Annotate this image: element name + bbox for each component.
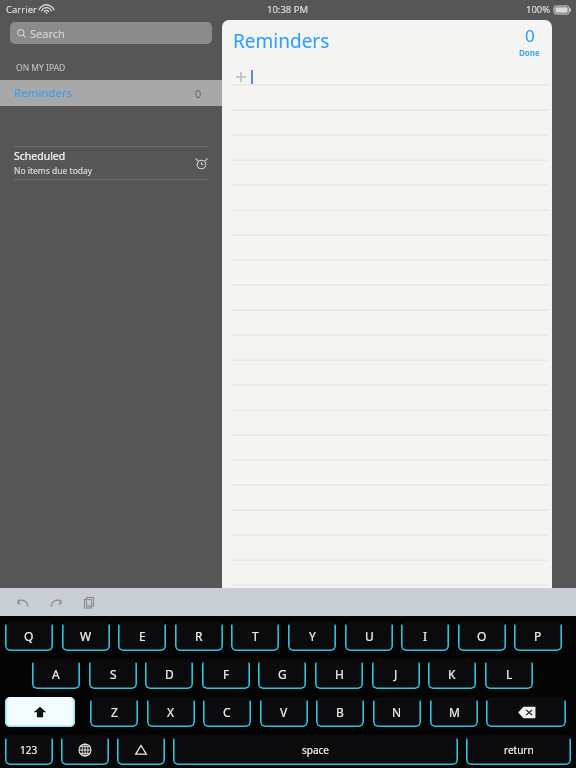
button[interactable]: K bbox=[428, 659, 476, 689]
staticText: X bbox=[167, 704, 175, 720]
button[interactable]: space bbox=[173, 735, 458, 765]
staticText: Reminders bbox=[233, 28, 330, 54]
staticText: F bbox=[223, 666, 230, 682]
staticText: R bbox=[195, 628, 203, 644]
staticText: T bbox=[252, 628, 259, 644]
staticText: Z bbox=[111, 704, 118, 720]
button[interactable]: N bbox=[373, 697, 421, 727]
button[interactable]: H bbox=[315, 659, 363, 689]
button[interactable]: L bbox=[485, 659, 533, 689]
staticText: space bbox=[302, 743, 329, 757]
button[interactable]: I bbox=[401, 621, 449, 651]
staticText: G bbox=[278, 666, 287, 682]
staticText: A bbox=[52, 666, 60, 682]
button[interactable]: Y bbox=[288, 621, 336, 651]
staticText: B bbox=[336, 704, 344, 720]
button[interactable]: Reminders bbox=[0, 80, 222, 106]
staticText: Search bbox=[30, 26, 65, 41]
other: Scheduled alarm bbox=[195, 157, 208, 170]
button[interactable]: Next keyboard bbox=[61, 735, 109, 765]
button[interactable]: E bbox=[118, 621, 166, 651]
button[interactable]: W bbox=[62, 621, 110, 651]
staticText: H bbox=[335, 666, 344, 682]
staticText: return bbox=[504, 743, 534, 757]
button[interactable]: G bbox=[258, 659, 306, 689]
staticText: 0 bbox=[525, 24, 535, 47]
button[interactable]: Redo bbox=[46, 592, 66, 612]
button[interactable]: B bbox=[316, 697, 364, 727]
button[interactable]: Undo bbox=[12, 592, 32, 612]
staticText: V bbox=[280, 704, 288, 720]
staticText: 100% bbox=[526, 3, 551, 16]
button[interactable]: X bbox=[147, 697, 195, 727]
staticText: Scheduled bbox=[14, 149, 66, 163]
button[interactable]: D bbox=[145, 659, 193, 689]
staticText: M bbox=[449, 704, 460, 720]
button[interactable]: V bbox=[260, 697, 308, 727]
button[interactable]: Shift bbox=[5, 697, 75, 727]
staticText: Q bbox=[24, 628, 34, 644]
button[interactable]: M bbox=[430, 697, 478, 727]
button[interactable]: C bbox=[203, 697, 251, 727]
staticText: 0 bbox=[195, 86, 202, 101]
staticText: I bbox=[423, 628, 428, 644]
button[interactable]: F bbox=[202, 659, 250, 689]
button[interactable]: Z bbox=[90, 697, 138, 727]
button[interactable]: T bbox=[231, 621, 279, 651]
button[interactable]: O bbox=[458, 621, 506, 651]
staticText: P bbox=[534, 628, 542, 644]
staticText: Reminders bbox=[14, 85, 73, 101]
staticText: Carrier bbox=[6, 3, 37, 16]
button[interactable]: Search bbox=[10, 22, 212, 44]
staticText: U bbox=[365, 628, 374, 644]
staticText: E bbox=[139, 628, 146, 644]
button[interactable]: Scheduled bbox=[14, 147, 208, 179]
staticText: 123 bbox=[20, 743, 38, 757]
staticText: C bbox=[223, 704, 231, 720]
staticText: L bbox=[506, 666, 513, 682]
staticText: ON MY IPAD bbox=[16, 62, 66, 74]
button[interactable]: return bbox=[466, 735, 571, 765]
staticText: W bbox=[80, 628, 92, 644]
staticText: K bbox=[448, 666, 456, 682]
staticText: D bbox=[165, 666, 174, 682]
button[interactable]: 123 bbox=[5, 735, 53, 765]
staticText: Y bbox=[309, 628, 316, 644]
staticText: O bbox=[477, 628, 487, 644]
staticText: S bbox=[110, 666, 117, 682]
staticText: 10:38 PM bbox=[267, 3, 309, 16]
button[interactable]: J bbox=[372, 659, 420, 689]
button[interactable]: Emoji bbox=[117, 735, 165, 765]
staticText: J bbox=[394, 666, 398, 682]
staticText: No items due today bbox=[14, 165, 93, 177]
button[interactable]: Q bbox=[5, 621, 53, 651]
button[interactable]: P bbox=[514, 621, 562, 651]
button[interactable]: Paste bbox=[80, 592, 100, 612]
button[interactable]: A bbox=[32, 659, 80, 689]
staticText: Done bbox=[519, 47, 540, 58]
button[interactable]: R bbox=[175, 621, 223, 651]
button[interactable]: U bbox=[345, 621, 393, 651]
staticText: N bbox=[392, 704, 402, 720]
button[interactable]: S bbox=[89, 659, 137, 689]
button[interactable]: Backspace bbox=[486, 697, 566, 727]
